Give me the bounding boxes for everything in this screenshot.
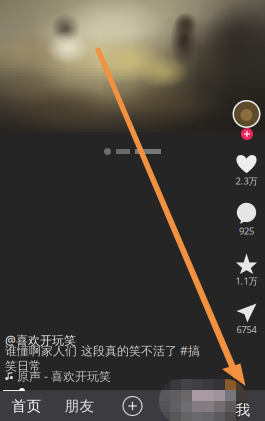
button[interactable]: 我 bbox=[228, 399, 258, 421]
button[interactable]: 我 bbox=[212, 391, 265, 421]
staticText: 原声 - 喜欢开玩笑 bbox=[17, 368, 111, 384]
button[interactable]: Creator profile bbox=[231, 99, 261, 129]
staticText: 消息 bbox=[170, 397, 200, 415]
staticText: 1.1万 bbox=[235, 275, 257, 287]
button[interactable]: 朋友 bbox=[53, 391, 106, 421]
staticText: 谁懂啊家人们 这段真的笑不活了 #搞笑日常 bbox=[5, 343, 200, 373]
button[interactable]: 6754 bbox=[224, 303, 265, 335]
button[interactable]: 2.3万 bbox=[224, 154, 265, 186]
staticText: 朋友 bbox=[64, 397, 94, 415]
staticText: @喜欢开玩笑 bbox=[5, 332, 76, 348]
staticText: 925 bbox=[239, 225, 254, 237]
staticText: 我 bbox=[231, 397, 246, 415]
button[interactable]: @喜欢开玩笑 bbox=[5, 331, 205, 385]
button[interactable]: Follow bbox=[240, 127, 254, 141]
button[interactable]: 首页 bbox=[0, 391, 53, 421]
staticText: 2.3万 bbox=[235, 175, 257, 187]
staticText: 6754 bbox=[236, 323, 256, 336]
button[interactable]: 925 bbox=[224, 204, 265, 236]
button[interactable]: 1.1万 bbox=[224, 254, 265, 286]
staticText: 我 bbox=[235, 401, 250, 419]
staticText: 首页 bbox=[11, 397, 41, 415]
button[interactable]: 消息 bbox=[159, 391, 212, 421]
button[interactable]: Post bbox=[106, 391, 159, 421]
